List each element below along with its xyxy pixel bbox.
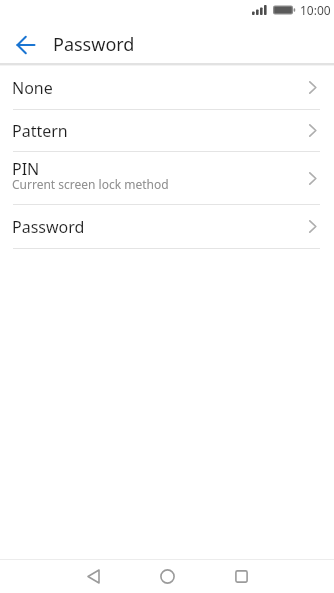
button[interactable] xyxy=(56,560,130,593)
staticText: Current screen lock method xyxy=(12,176,169,192)
button[interactable]: Pattern xyxy=(0,110,334,151)
staticText: None xyxy=(12,77,53,99)
staticText: 10:00 xyxy=(300,2,331,18)
button[interactable]: Password xyxy=(0,205,334,248)
staticText: PIN xyxy=(12,158,40,180)
button[interactable]: PIN xyxy=(0,152,334,204)
staticText: Pattern xyxy=(12,120,68,142)
staticText: Password xyxy=(53,32,135,57)
button[interactable]: None xyxy=(0,66,334,109)
staticText: Password xyxy=(12,216,85,238)
button[interactable] xyxy=(130,560,204,593)
button[interactable] xyxy=(0,24,48,63)
button[interactable] xyxy=(204,560,278,593)
